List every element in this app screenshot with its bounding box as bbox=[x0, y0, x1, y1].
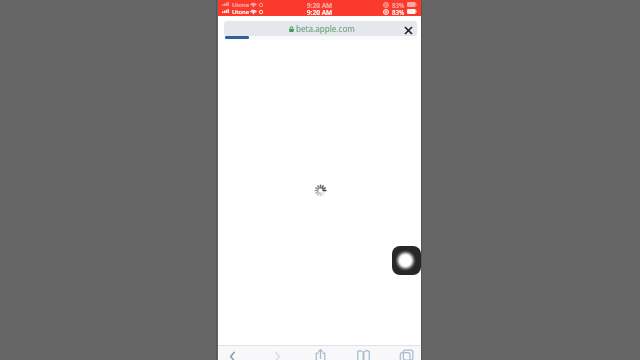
button[interactable]: Tabs bbox=[397, 346, 415, 360]
staticText: 83% bbox=[392, 8, 405, 15]
staticText: 9:20 AM bbox=[218, 1, 421, 8]
button[interactable]: Share bbox=[311, 346, 329, 360]
button[interactable]: Close bbox=[400, 24, 416, 36]
staticText: Utone bbox=[232, 8, 250, 15]
staticText: beta.apple.com bbox=[296, 23, 355, 34]
staticText: Utone bbox=[232, 1, 250, 8]
staticText: 9:20 AM bbox=[218, 8, 421, 15]
button[interactable]: Back bbox=[223, 346, 241, 360]
button[interactable]: Bookmarks bbox=[354, 346, 372, 360]
button[interactable]: Forward bbox=[268, 346, 286, 360]
button[interactable]: beta.apple.com bbox=[224, 21, 417, 36]
button[interactable]: AssistiveTouch bbox=[392, 246, 421, 275]
staticText: 83% bbox=[392, 1, 405, 8]
